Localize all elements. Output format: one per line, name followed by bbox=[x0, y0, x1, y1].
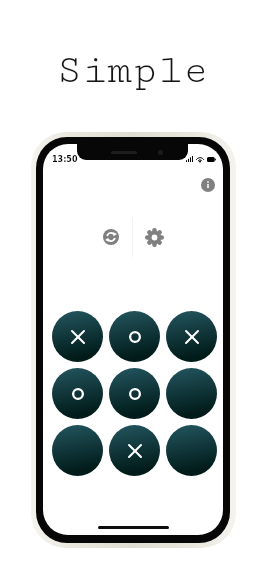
staticText: Simple bbox=[56, 47, 209, 93]
button[interactable]: O bbox=[109, 368, 160, 419]
button[interactable]: Settings bbox=[133, 215, 176, 259]
button[interactable]: X bbox=[109, 425, 160, 476]
button[interactable]: Empty cell bbox=[52, 425, 103, 476]
button[interactable]: X bbox=[166, 311, 217, 362]
button[interactable]: Info bbox=[198, 175, 218, 195]
button[interactable]: Reset game bbox=[89, 215, 132, 259]
button[interactable]: Empty cell bbox=[166, 368, 217, 419]
staticText: 13:50 bbox=[52, 155, 78, 164]
button[interactable]: O bbox=[52, 368, 103, 419]
button[interactable]: Empty cell bbox=[166, 425, 217, 476]
button[interactable]: X bbox=[52, 311, 103, 362]
button[interactable]: O bbox=[109, 311, 160, 362]
